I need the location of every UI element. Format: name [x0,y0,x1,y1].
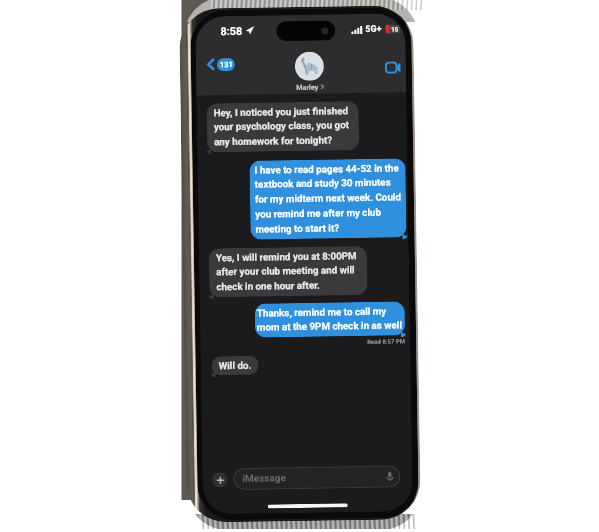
staticText: Thanks, remind me to call my mom at the … [257,305,403,334]
staticText: 5G+ [365,24,382,35]
button[interactable]: iMessage [233,465,400,490]
button[interactable]: Marley contact details [295,52,324,91]
button[interactable]: Back to conversation list [204,55,238,73]
staticText: Hey, I noticed you just finished your ps… [213,105,352,148]
button[interactable]: I have to read pages 44-52 in the textbo… [249,158,407,240]
staticText: Read 8:57 PM [367,337,405,345]
button[interactable]: Hey, I noticed you just finished your ps… [206,101,359,152]
staticText: Will do. [218,360,252,371]
staticText: Marley [296,83,319,91]
button[interactable]: Add attachment [212,472,227,487]
button[interactable]: Will do. [211,356,259,375]
staticText: 131 [220,60,233,69]
staticText: 15 [391,25,398,32]
staticText: iMessage [242,472,286,485]
staticText: Yes, I will remind you at 8:00PM after y… [216,250,360,293]
staticText: 8:58 [220,25,243,38]
button[interactable]: Yes, I will remind you at 8:00PM after y… [209,246,367,297]
button[interactable]: Thanks, remind me to call my mom at the … [255,301,405,338]
staticText: I have to read pages 44-52 in the textbo… [254,162,401,236]
button[interactable]: FaceTime video call [383,59,403,76]
